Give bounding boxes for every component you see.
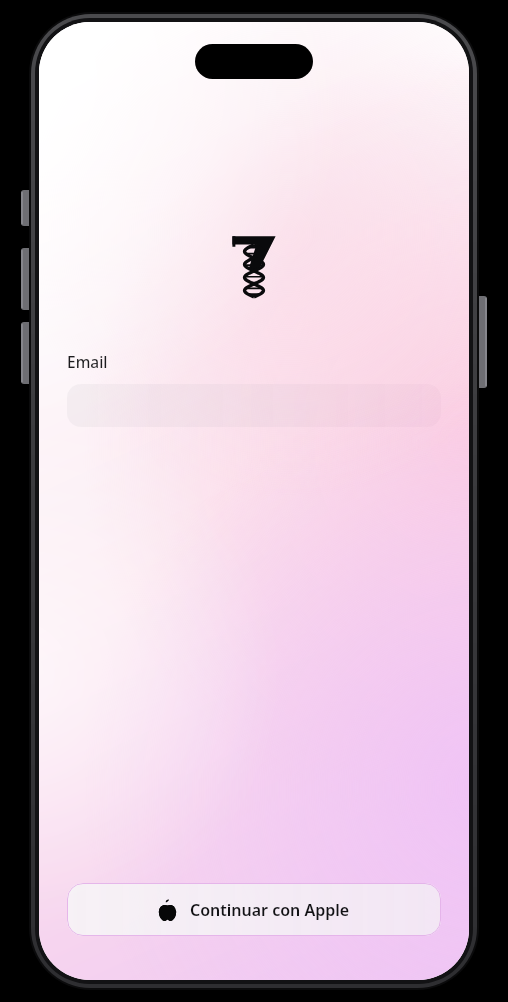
other: Logo [227,235,281,297]
button[interactable]: Continuar con Apple [67,883,441,936]
staticText: Continuar con Apple [190,899,350,921]
staticText: Email [67,351,108,372]
button[interactable] [67,384,441,427]
